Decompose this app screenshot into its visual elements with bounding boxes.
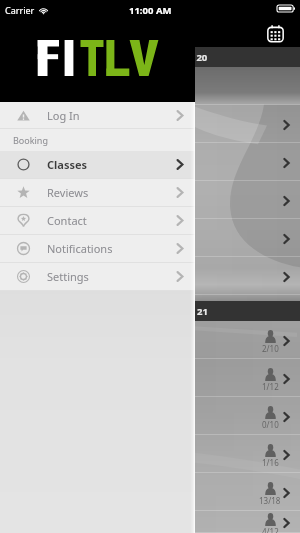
button[interactable] xyxy=(0,143,300,181)
staticText: Log In xyxy=(47,108,80,123)
button[interactable]: Log In xyxy=(0,102,195,128)
button[interactable]: 13/18 xyxy=(0,473,300,511)
button[interactable]: Reviews xyxy=(0,179,195,206)
button[interactable]: Notifications xyxy=(0,235,195,262)
staticText: THURSDAY, MAY 21 xyxy=(119,305,208,318)
button[interactable]: 4/12 xyxy=(0,511,300,533)
staticText: 1/16 xyxy=(262,457,279,468)
staticText: Contact xyxy=(47,213,87,228)
staticText: Classes xyxy=(47,157,88,172)
button[interactable]: 1/16 xyxy=(0,435,300,473)
button[interactable] xyxy=(0,105,300,143)
button[interactable]: 1/12 xyxy=(0,359,300,397)
staticText: 2/10 xyxy=(262,343,279,354)
staticText: WEDNESDAY, MAY 20 xyxy=(110,51,208,64)
staticText: 0/10 xyxy=(262,419,279,430)
button[interactable] xyxy=(0,257,300,295)
button[interactable]: 2/10 xyxy=(0,321,300,359)
staticText: 13/18 xyxy=(259,495,281,506)
button[interactable]: Calendar xyxy=(261,19,289,47)
staticText: Booking xyxy=(13,134,48,146)
staticText: 4/12 xyxy=(262,526,279,533)
staticText: 1/12 xyxy=(262,381,279,392)
button[interactable]: Contact xyxy=(0,207,195,234)
button[interactable]: 0/10 xyxy=(0,397,300,435)
button[interactable]: Settings xyxy=(0,263,195,290)
staticText: Carrier xyxy=(5,4,35,16)
staticText: Settings xyxy=(47,269,89,284)
button[interactable] xyxy=(0,181,300,219)
staticText: Notifications xyxy=(47,241,113,256)
button[interactable]: Classes xyxy=(0,151,195,178)
staticText: Reviews xyxy=(47,185,89,200)
staticText: 11:00 AM xyxy=(129,4,172,17)
button[interactable] xyxy=(0,219,300,257)
